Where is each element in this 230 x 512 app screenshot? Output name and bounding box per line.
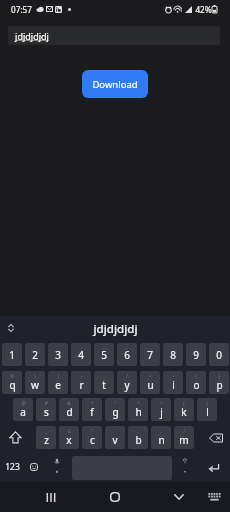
staticText: > [172,373,175,379]
staticText: & [67,400,71,406]
staticText: e [55,378,61,392]
staticText: ) [206,400,208,406]
staticText: d [66,405,73,419]
staticText: 7 [147,348,153,362]
button[interactable]: jdjdjdjdj [8,26,220,45]
button[interactable]: \ [25,371,45,394]
staticText: 1 [9,348,15,362]
button[interactable]: @ [13,398,33,421]
button[interactable]: { [186,371,206,394]
staticText: c [90,433,95,447]
staticText: @ [21,400,26,406]
button[interactable]: £ [59,426,79,449]
staticText: { [195,373,197,379]
button[interactable]: Recents [29,482,73,512]
button[interactable]: Voice input [47,454,67,480]
staticText: 123 [5,461,20,473]
button[interactable]: 0 [209,343,229,366]
button[interactable]: = [151,398,171,421]
staticText: l [206,405,209,419]
button[interactable]: 1 [2,343,22,366]
staticText: * [91,400,94,406]
staticText: m [179,433,189,447]
button[interactable]: _ [36,426,56,449]
staticText: w [31,378,39,392]
staticText: + [137,400,140,406]
button[interactable]: 4 [71,343,91,366]
button[interactable]: Hide keyboard [157,482,201,512]
staticText: jdjdjdjdj [93,321,138,337]
button[interactable]: | [48,371,68,394]
button[interactable]: 3 [48,343,68,366]
staticText: k [181,405,187,419]
button[interactable]: 123 [2,454,22,480]
button[interactable]: : [128,426,148,449]
staticText: x [66,433,72,447]
button[interactable]: 8 [163,343,183,366]
button[interactable]: 9 [186,343,206,366]
staticText: 4 [78,348,84,362]
staticText: % [10,373,14,379]
staticText: r [79,378,84,392]
staticText: _ [45,428,47,434]
staticText: 07:57 [11,4,32,15]
button[interactable]: / [174,426,194,449]
staticText: 8 [170,348,176,362]
button[interactable]: Download [82,70,148,98]
staticText: \ [34,373,36,379]
button[interactable]: ; [151,426,171,449]
staticText: u [147,378,154,392]
button[interactable]: 2 [25,343,45,366]
staticText: i [172,378,175,392]
button[interactable]: - [94,371,114,394]
staticText: 42% [195,4,212,15]
button[interactable]: * [82,398,102,421]
staticText: h [135,405,142,419]
staticText: y [124,378,130,392]
button[interactable]: ) [197,398,217,421]
staticText: jdjdjdjdj [15,30,49,42]
button[interactable]: + [128,398,148,421]
button[interactable]: " [82,426,102,449]
staticText: 6 [124,348,130,362]
staticText: 9 [193,348,199,362]
staticText: = [160,400,163,406]
button[interactable]: < [140,371,160,394]
button[interactable]: Backspace [200,426,230,449]
button[interactable]: } [209,371,229,394]
button[interactable]: 6 [117,343,137,366]
button[interactable]: Expand suggestions [6,323,16,333]
button[interactable]: 7 [140,343,160,366]
button[interactable]: # [36,398,56,421]
staticText: g [112,405,119,419]
staticText: v [112,433,118,447]
staticText: s [44,405,49,419]
staticText: a [20,405,26,419]
button[interactable]: ' [105,426,125,449]
button[interactable]: Change keyboard [199,482,230,512]
staticText: b [135,433,142,447]
button[interactable]: & [59,398,79,421]
button[interactable]: % [2,371,22,394]
staticText: # [45,400,48,406]
staticText: 2 [32,348,38,362]
staticText: ' [114,428,116,434]
button[interactable]: / [117,371,137,394]
button[interactable]: 5 [94,343,114,366]
button[interactable] [175,454,195,480]
staticText: : [137,428,139,434]
button[interactable]: Shift [0,426,31,449]
button[interactable]: > [163,371,183,394]
button[interactable]: Home [93,482,137,512]
staticText: 5 [101,348,107,362]
staticText: / [126,373,128,379]
staticText: £ [68,428,71,434]
staticText: f [90,405,94,419]
button[interactable]: ° [105,398,125,421]
button[interactable]: Emoji [24,454,44,480]
button[interactable]: ( [174,398,194,421]
button[interactable]: ~ [71,371,91,394]
button[interactable]: Enter [198,454,229,480]
staticText: o [193,378,200,392]
